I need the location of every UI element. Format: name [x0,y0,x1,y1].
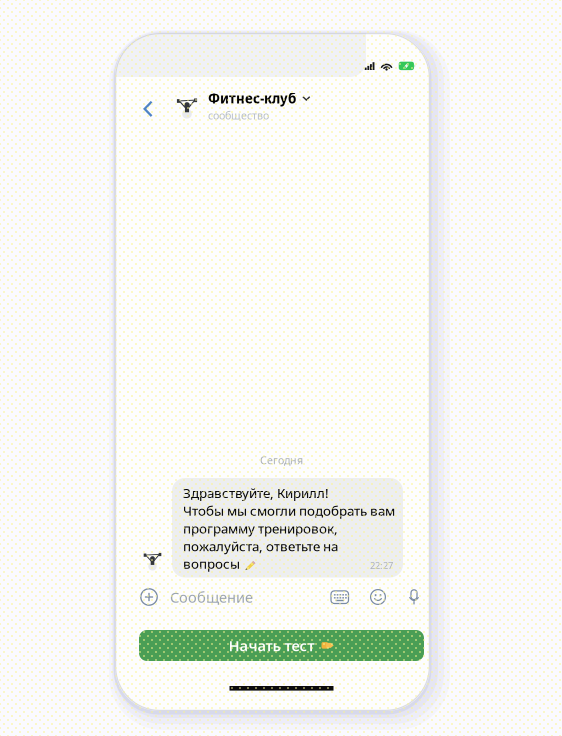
staticText: Фитнес-клуб [208,90,296,107]
staticText: Сообщение [170,587,253,607]
staticText: Чтобы мы смогли подобрать вам [183,502,395,519]
staticText: программу тренировок, [183,519,338,537]
button[interactable]: Сообщение [170,584,327,610]
button[interactable]: Начать тест [139,630,424,661]
button[interactable]: Стикеры [366,584,390,610]
staticText: Начать тест [228,636,314,655]
button[interactable]: Фитнес-клуб [175,91,311,121]
staticText: пожалуйста, ответьте на [183,537,338,555]
staticText: 22:27 [370,559,393,571]
staticText: сообщество [208,108,269,122]
button[interactable]: Назад [139,91,163,121]
staticText: Сегодня [260,453,303,467]
staticText: вопросы [183,555,240,572]
button[interactable]: Клавиатура [327,584,353,610]
button[interactable]: Прикрепить [136,584,162,610]
staticText: Здравствуйте, Кирилл! [183,484,329,502]
button[interactable]: Голосовое сообщение [404,584,424,610]
